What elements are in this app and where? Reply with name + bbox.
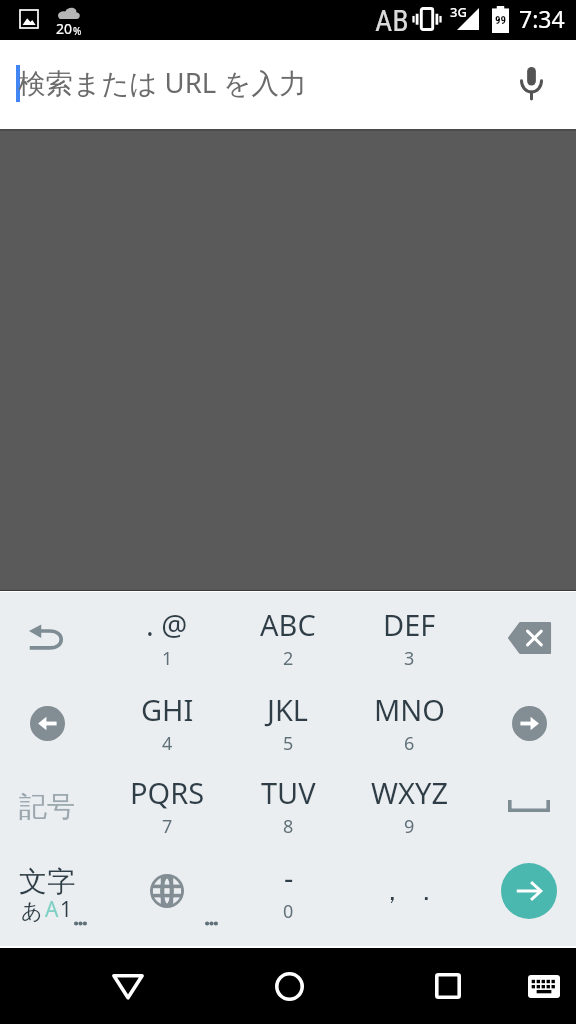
staticText: 検索または URL を入力 — [18, 64, 307, 102]
staticText: PQRS — [130, 773, 205, 812]
button[interactable]: Cursor left — [0, 679, 94, 767]
button[interactable]: ABC — [228, 594, 348, 682]
staticText: 7 — [162, 814, 173, 839]
button[interactable]: Enter — [482, 841, 576, 941]
button[interactable]: PQRS — [107, 762, 227, 850]
staticText: % — [73, 24, 82, 38]
staticText: 記号 — [19, 789, 75, 824]
staticText: 99 — [495, 14, 507, 27]
staticText: 文字 — [19, 864, 75, 899]
staticText: 20 — [56, 19, 73, 38]
button[interactable]: 文字 — [0, 841, 94, 941]
staticText: 0 — [283, 899, 294, 924]
button[interactable]: WXYZ — [349, 762, 469, 850]
staticText: MNO — [374, 690, 445, 729]
staticText: - — [284, 858, 294, 897]
staticText: 7:34 — [519, 3, 565, 34]
staticText: WXYZ — [371, 773, 448, 812]
button[interactable]: Back — [90, 948, 166, 1024]
button[interactable]: - — [228, 847, 348, 935]
button[interactable]: Space — [482, 762, 576, 850]
button[interactable]: Delete — [482, 594, 576, 682]
staticText: GHI — [141, 690, 194, 729]
staticText: 8 — [283, 814, 294, 839]
staticText: 1 — [162, 646, 173, 671]
button[interactable]: ， — [349, 841, 469, 941]
staticText: TUV — [261, 773, 316, 812]
button[interactable]: TUV — [228, 762, 348, 850]
button[interactable]: Switch keyboard — [107, 841, 227, 941]
button[interactable]: 記号 — [0, 762, 94, 850]
staticText: . @ — [146, 605, 188, 644]
staticText: 2 — [283, 646, 294, 671]
staticText: 5 — [283, 731, 294, 756]
button[interactable]: Home — [251, 948, 327, 1024]
staticText: ABC — [260, 605, 316, 644]
staticText: 9 — [404, 814, 415, 839]
button[interactable]: Undo — [0, 594, 94, 682]
staticText: ， — [379, 875, 405, 908]
button[interactable]: GHI — [107, 679, 227, 767]
button[interactable]: . @ — [107, 594, 227, 682]
button[interactable]: Recent apps — [410, 948, 486, 1024]
staticText: ． — [413, 875, 439, 908]
staticText: 3 — [404, 646, 415, 671]
staticText: 1 — [60, 895, 73, 924]
button[interactable]: MNO — [349, 679, 469, 767]
staticText: 6 — [404, 731, 415, 756]
staticText: A — [45, 895, 59, 924]
staticText: DEF — [383, 605, 436, 644]
staticText: 3G — [450, 3, 467, 21]
staticText: 4 — [162, 731, 173, 756]
button[interactable]: Switch keyboard — [506, 948, 576, 1024]
button[interactable]: Cursor right — [482, 679, 576, 767]
button[interactable]: Voice search — [508, 60, 554, 106]
staticText: AB — [375, 3, 409, 38]
button[interactable]: DEF — [349, 594, 469, 682]
staticText: あ — [21, 898, 43, 924]
staticText: JKL — [267, 690, 309, 729]
button[interactable]: JKL — [228, 679, 348, 767]
